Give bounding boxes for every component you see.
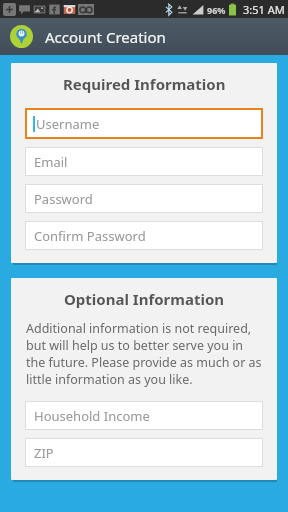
staticText: Optional Information: [64, 289, 225, 309]
staticText: Confirm Password: [34, 227, 146, 245]
button[interactable]: Confirm Password: [25, 221, 263, 250]
button[interactable]: Username: [27, 110, 263, 141]
button[interactable]: ZIP: [25, 438, 263, 467]
staticText: Household Income: [36, 409, 152, 427]
staticText: 96%: [207, 4, 226, 16]
staticText: Email: [34, 153, 68, 171]
staticText: Additional information is not required, …: [28, 322, 262, 390]
staticText: 3:51 AM: [243, 2, 285, 17]
staticText: Username: [38, 117, 102, 135]
button[interactable]: Username: [25, 108, 263, 139]
button[interactable]: Household Income: [25, 401, 263, 430]
staticText: ZIP: [36, 446, 56, 464]
button[interactable]: Password: [25, 184, 263, 213]
button[interactable]: Email: [25, 147, 263, 176]
staticText: ZIP: [34, 444, 54, 462]
other: App logo: [9, 24, 34, 49]
staticText: Optional Information: [65, 291, 226, 311]
staticText: Confirm Password: [36, 229, 148, 247]
button[interactable]: Password: [27, 186, 263, 215]
button[interactable]: Confirm Password: [27, 223, 263, 252]
staticText: Additional information is not required, …: [26, 320, 262, 388]
staticText: Required Information: [64, 76, 227, 96]
button[interactable]: ZIP: [27, 440, 263, 469]
staticText: Required Information: [63, 74, 226, 94]
staticText: Username: [36, 115, 100, 133]
staticText: Household Income: [34, 407, 150, 425]
button[interactable]: Email: [27, 149, 263, 178]
staticText: Password: [36, 192, 95, 210]
button[interactable]: Household Income: [27, 403, 263, 432]
staticText: Account Creation: [45, 27, 166, 47]
staticText: Password: [34, 190, 93, 208]
staticText: Email: [36, 155, 70, 173]
